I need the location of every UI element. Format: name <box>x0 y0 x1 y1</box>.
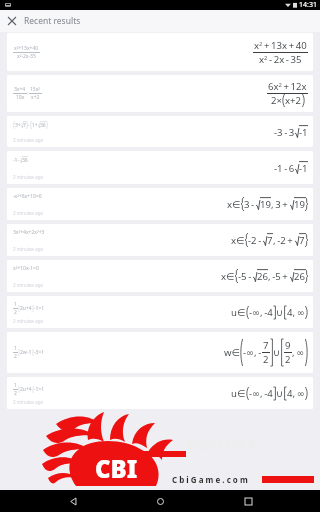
staticText: x2+13x+40 <box>14 45 39 52</box>
staticText: 2 minutes ago <box>13 399 44 405</box>
staticText: -x2+6x+10=0 <box>13 193 42 200</box>
staticText: 1 <box>14 382 17 389</box>
staticText: ∪ <box>276 307 284 318</box>
button[interactable]: -x2+6x+10=0 <box>7 188 313 220</box>
staticText: 10x <box>16 94 25 101</box>
button[interactable]: Close <box>0 10 24 32</box>
button[interactable]: -1- <box>7 151 313 184</box>
staticText: x∈ <box>227 198 241 211</box>
staticText: 1 <box>14 301 17 308</box>
staticText: -3>1 <box>34 349 45 356</box>
staticText: 1 <box>14 345 17 352</box>
staticText: -1 <box>299 162 308 175</box>
staticText: x+2 <box>285 94 302 107</box>
staticText: -2 - <box>248 234 263 247</box>
staticText: CBI <box>95 452 138 485</box>
staticText: u∈ <box>231 306 246 319</box>
staticText: 2 minutes ago <box>13 137 44 143</box>
button[interactable]: Recents <box>233 490 263 512</box>
staticText: 2 <box>285 353 291 366</box>
staticText: · <box>28 122 30 129</box>
staticText: 7 <box>263 339 269 352</box>
staticText: 2 <box>263 353 269 366</box>
staticText: -∞, -4 <box>249 387 273 400</box>
staticText: 19 <box>294 198 305 211</box>
staticText: , -5 + <box>268 270 290 283</box>
staticText: -∞, -4 <box>249 306 273 319</box>
staticText: -3 - 3 <box>274 126 295 139</box>
staticText: 7 <box>267 234 273 247</box>
staticText: x2+10x-1=0 <box>13 265 39 272</box>
staticText: 36 <box>22 157 28 164</box>
staticText: 7 <box>23 122 26 129</box>
staticText: , 3 + <box>271 198 290 211</box>
staticText: x∈ <box>231 234 245 247</box>
staticText: 26 <box>257 270 268 283</box>
staticText: -1 - 6 <box>274 162 295 175</box>
staticText: x2 + 13x + 40 <box>254 39 307 52</box>
staticText: x∈ <box>221 270 235 283</box>
staticText: C b i G a m e . c o m <box>172 474 248 485</box>
staticText: , ∞ <box>292 346 305 359</box>
staticText: 2u+4 <box>20 305 32 312</box>
staticText: -∞, - <box>243 346 262 359</box>
staticText: 19 <box>260 198 271 211</box>
staticText: x2 - 2x - 35 <box>259 53 302 66</box>
staticText: 15x2 <box>30 86 41 93</box>
button[interactable]: 3x3+4x+2x2+3 <box>7 224 313 256</box>
staticText: 2 <box>14 390 17 397</box>
staticText: x2-2x-35 <box>17 53 36 60</box>
staticText: 2 minutes ago <box>13 210 44 216</box>
staticText: ∪ <box>273 347 281 358</box>
button[interactable]: Back <box>58 490 88 512</box>
staticText: ∪ <box>276 388 284 399</box>
staticText: 2 <box>14 309 17 316</box>
staticText: 6x2 + 12x <box>268 80 307 93</box>
button[interactable]: Home <box>145 490 175 512</box>
staticText: 3+ <box>15 122 21 129</box>
staticText: 2u+4 <box>20 386 32 393</box>
staticText: 2 minutes ago <box>13 246 44 252</box>
staticText: 1+ <box>32 122 38 129</box>
button[interactable]: x2+10x-1=0 <box>7 260 313 292</box>
staticText: 3x3+4x+2x2+3 <box>13 229 45 236</box>
staticText: 26 <box>294 270 305 283</box>
staticText: 9 <box>285 339 291 352</box>
staticText: Recent results <box>24 15 81 27</box>
staticText: 3x+4 <box>14 86 26 93</box>
staticText: 2 minutes ago <box>13 282 44 288</box>
staticText: 2× <box>271 94 282 107</box>
staticText: 2w-1 <box>20 349 32 356</box>
button[interactable]: 1 <box>7 332 313 373</box>
staticText: -1- <box>13 157 20 164</box>
button[interactable]: x2+13x+40 <box>7 33 313 71</box>
staticText: x+2 <box>31 94 40 101</box>
staticText: 2 minutes ago <box>13 174 44 180</box>
staticText: 7 <box>299 234 305 247</box>
staticText: 3 - <box>244 198 256 211</box>
button[interactable]: 3+ <box>7 116 313 147</box>
button[interactable]: 1 <box>7 296 313 328</box>
staticText: -5 - <box>238 270 253 283</box>
staticText: 2 minutes ago <box>13 318 44 324</box>
staticText: w∈ <box>224 346 240 359</box>
staticText: 2 <box>14 353 17 360</box>
staticText: -1>1 <box>34 305 45 312</box>
staticText: 36 <box>40 122 46 129</box>
staticText: : <box>27 90 29 97</box>
staticText: 4, ∞ <box>287 306 305 319</box>
staticText: 14:31 <box>299 0 317 10</box>
button[interactable]: 3x+4 <box>7 75 313 112</box>
staticText: -1 <box>299 126 308 139</box>
staticText: u∈ <box>231 387 246 400</box>
staticText: -1>1 <box>34 386 45 393</box>
staticText: 4, ∞ <box>287 387 305 400</box>
staticText: , -2 + <box>273 234 295 247</box>
button[interactable]: 1 <box>7 377 313 409</box>
